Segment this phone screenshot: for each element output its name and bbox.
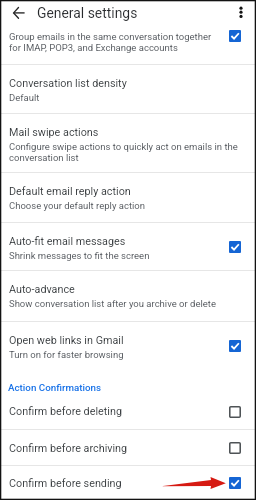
button[interactable]: Mail swipe actions [0, 114, 256, 172]
staticText: Turn on for faster browsing [9, 349, 124, 360]
button[interactable]: Navigate up [5, 0, 33, 24]
staticText: Conversation list density [9, 77, 127, 90]
button[interactable]: Group emails in the same conversation to… [0, 24, 256, 63]
button[interactable]: Confirm before deleting [0, 394, 256, 429]
staticText: Mail swipe actions [9, 126, 99, 139]
staticText: Default email reply action [9, 185, 131, 198]
staticText: Show conversation list after you archive… [9, 298, 216, 309]
button[interactable]: Auto-advance [0, 271, 256, 321]
button[interactable]: Default email reply action [0, 173, 256, 222]
button[interactable]: Auto-fit email messages [229, 241, 241, 253]
button[interactable]: Open web links in Gmail [0, 322, 256, 370]
button[interactable]: Conversation view [229, 30, 241, 42]
staticText: Auto-fit email messages [9, 235, 126, 248]
staticText: Action Confirmations [8, 382, 102, 393]
staticText: Confirm before archiving [9, 442, 128, 455]
staticText: Group emails in the same conversation to… [9, 31, 220, 53]
staticText: Default [9, 92, 40, 103]
staticText: Choose your default reply action [9, 200, 145, 211]
button[interactable]: Conversation list density [0, 65, 256, 114]
button[interactable]: Confirm before archiving [229, 442, 241, 454]
staticText: Confirm before sending [9, 477, 122, 490]
staticText: Shrink messages to fit the screen [9, 250, 150, 261]
button[interactable]: Auto-fit email messages [0, 223, 256, 270]
staticText: Auto-advance [9, 283, 75, 296]
staticText: Confirm before deleting [9, 405, 122, 418]
staticText: Open web links in Gmail [9, 334, 124, 347]
staticText: Configure swipe actions to quickly act o… [9, 141, 242, 163]
button[interactable]: Confirm before sending [0, 466, 256, 500]
staticText: General settings [37, 5, 138, 21]
button[interactable]: Confirm before archiving [0, 430, 256, 466]
button[interactable]: Confirm before deleting [229, 406, 241, 418]
button[interactable]: Open web links in Gmail [229, 340, 241, 352]
button[interactable]: More options [227, 0, 255, 24]
button[interactable]: Confirm before sending [229, 477, 241, 489]
